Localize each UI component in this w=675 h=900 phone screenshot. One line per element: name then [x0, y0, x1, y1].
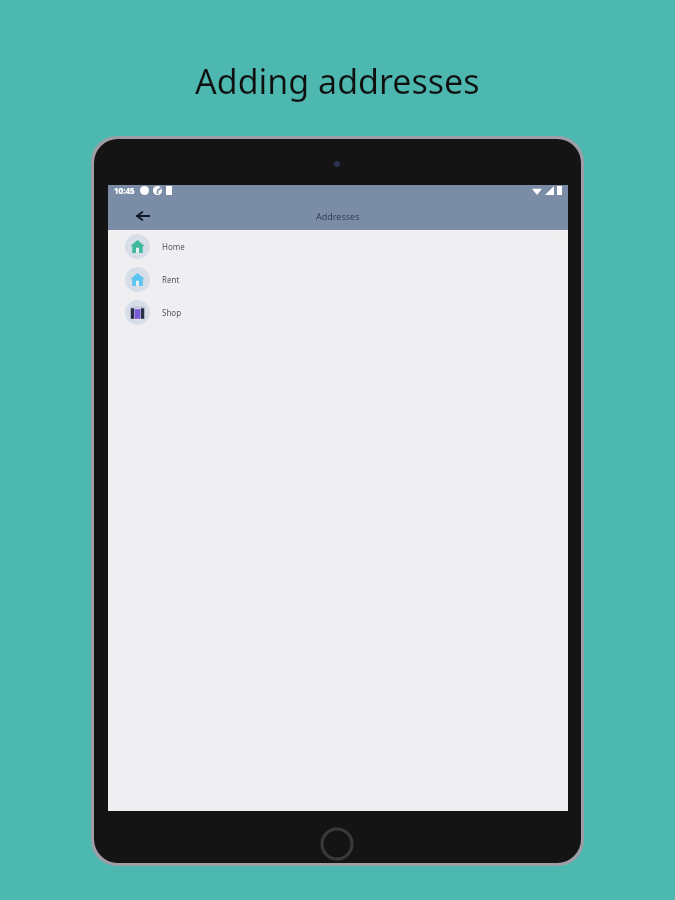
- staticText: Home: [162, 241, 185, 252]
- button[interactable]: Home: [108, 230, 568, 263]
- button[interactable]: Back: [130, 203, 156, 229]
- staticText: Shop: [162, 307, 182, 318]
- button[interactable]: Shop: [108, 296, 568, 329]
- button[interactable]: Rent: [108, 263, 568, 296]
- staticText: Addresses: [316, 210, 360, 222]
- staticText: Adding addresses: [195, 58, 480, 104]
- button[interactable]: Home: [320, 827, 354, 861]
- staticText: 10:45: [114, 185, 135, 196]
- staticText: Rent: [162, 274, 180, 285]
